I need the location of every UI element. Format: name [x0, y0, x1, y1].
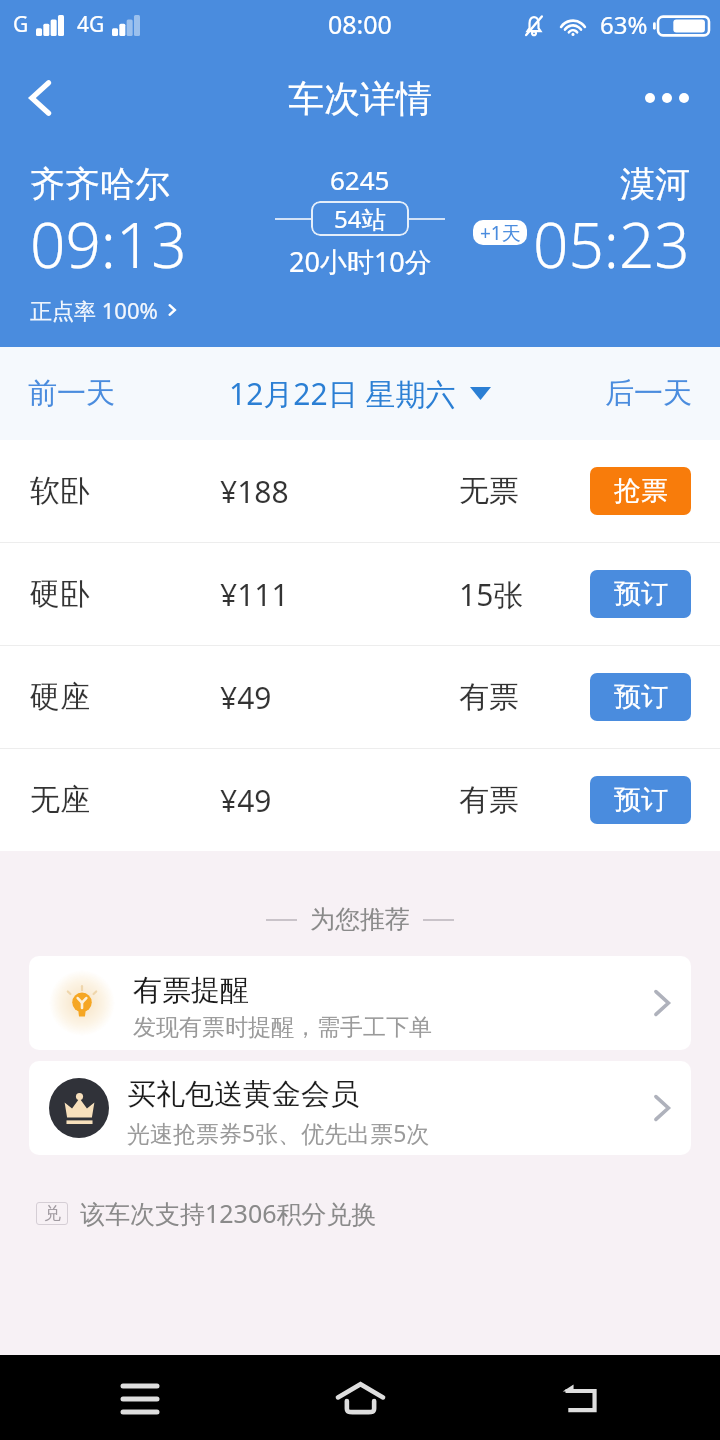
- button[interactable]: 预订: [590, 776, 691, 824]
- staticText: ¥49: [220, 677, 272, 718]
- staticText: ¥188: [220, 471, 289, 512]
- staticText: 有票: [459, 678, 519, 716]
- button[interactable]: 硬卧: [0, 543, 720, 645]
- staticText: 齐齐哈尔: [30, 162, 170, 206]
- button[interactable]: 硬座: [0, 646, 720, 748]
- staticText: 63%: [600, 8, 648, 41]
- staticText: 预订: [614, 577, 668, 611]
- button[interactable]: 抢票: [590, 467, 691, 515]
- staticText: ¥49: [220, 780, 272, 821]
- staticText: 漠河: [620, 162, 690, 206]
- staticText: ¥111: [220, 574, 289, 615]
- staticText: 为您推荐: [310, 904, 410, 935]
- button[interactable]: 无座: [0, 749, 720, 851]
- button[interactable]: Recent apps: [96, 1355, 184, 1440]
- button[interactable]: Back: [535, 1355, 623, 1440]
- button[interactable]: 54站: [311, 201, 409, 236]
- staticText: 软卧: [30, 472, 90, 510]
- button[interactable]: Home: [316, 1355, 404, 1440]
- button[interactable]: 买礼包送黄金会员: [29, 1061, 691, 1155]
- staticText: 有票: [459, 781, 519, 819]
- staticText: 光速抢票券5张、优先出票5次: [127, 1117, 430, 1148]
- staticText: +1天: [480, 220, 521, 245]
- staticText: 抢票: [614, 474, 668, 508]
- staticText: 4G: [77, 10, 105, 39]
- staticText: 05:23: [533, 202, 690, 286]
- staticText: 兑: [44, 1203, 61, 1224]
- button[interactable]: 12月22日 星期六: [229, 373, 491, 414]
- staticText: 15张: [459, 574, 524, 615]
- staticText: 54站: [334, 202, 386, 235]
- staticText: 硬卧: [30, 575, 90, 613]
- staticText: 08:00: [328, 7, 392, 41]
- button[interactable]: 软卧: [0, 440, 720, 542]
- staticText: 12月22日 星期六: [229, 373, 456, 414]
- staticText: 前一天: [28, 375, 115, 412]
- staticText: G: [13, 10, 29, 39]
- button[interactable]: 有票提醒: [29, 956, 691, 1050]
- staticText: 正点率 100%: [30, 295, 158, 325]
- staticText: 预订: [614, 783, 668, 817]
- staticText: 有票提醒: [133, 972, 249, 1009]
- button[interactable]: More options: [638, 69, 696, 127]
- staticText: 预订: [614, 680, 668, 714]
- staticText: 20小时10分: [289, 243, 432, 280]
- staticText: 无票: [459, 472, 519, 510]
- staticText: 发现有票时提醒，需手工下单: [133, 1013, 432, 1042]
- button[interactable]: Back: [14, 72, 66, 124]
- staticText: 该车次支持12306积分兑换: [80, 1196, 377, 1230]
- staticText: 无座: [30, 781, 90, 819]
- staticText: 车次详情: [288, 76, 432, 121]
- button[interactable]: 后一天: [605, 375, 692, 412]
- staticText: 硬座: [30, 678, 90, 716]
- staticText: 后一天: [605, 375, 692, 412]
- button[interactable]: 前一天: [28, 375, 115, 412]
- button[interactable]: 预订: [590, 570, 691, 618]
- staticText: 买礼包送黄金会员: [127, 1076, 359, 1113]
- button[interactable]: 正点率 100%: [30, 295, 180, 325]
- button[interactable]: 预订: [590, 673, 691, 721]
- staticText: 09:13: [30, 202, 187, 286]
- staticText: 6245: [330, 162, 390, 197]
